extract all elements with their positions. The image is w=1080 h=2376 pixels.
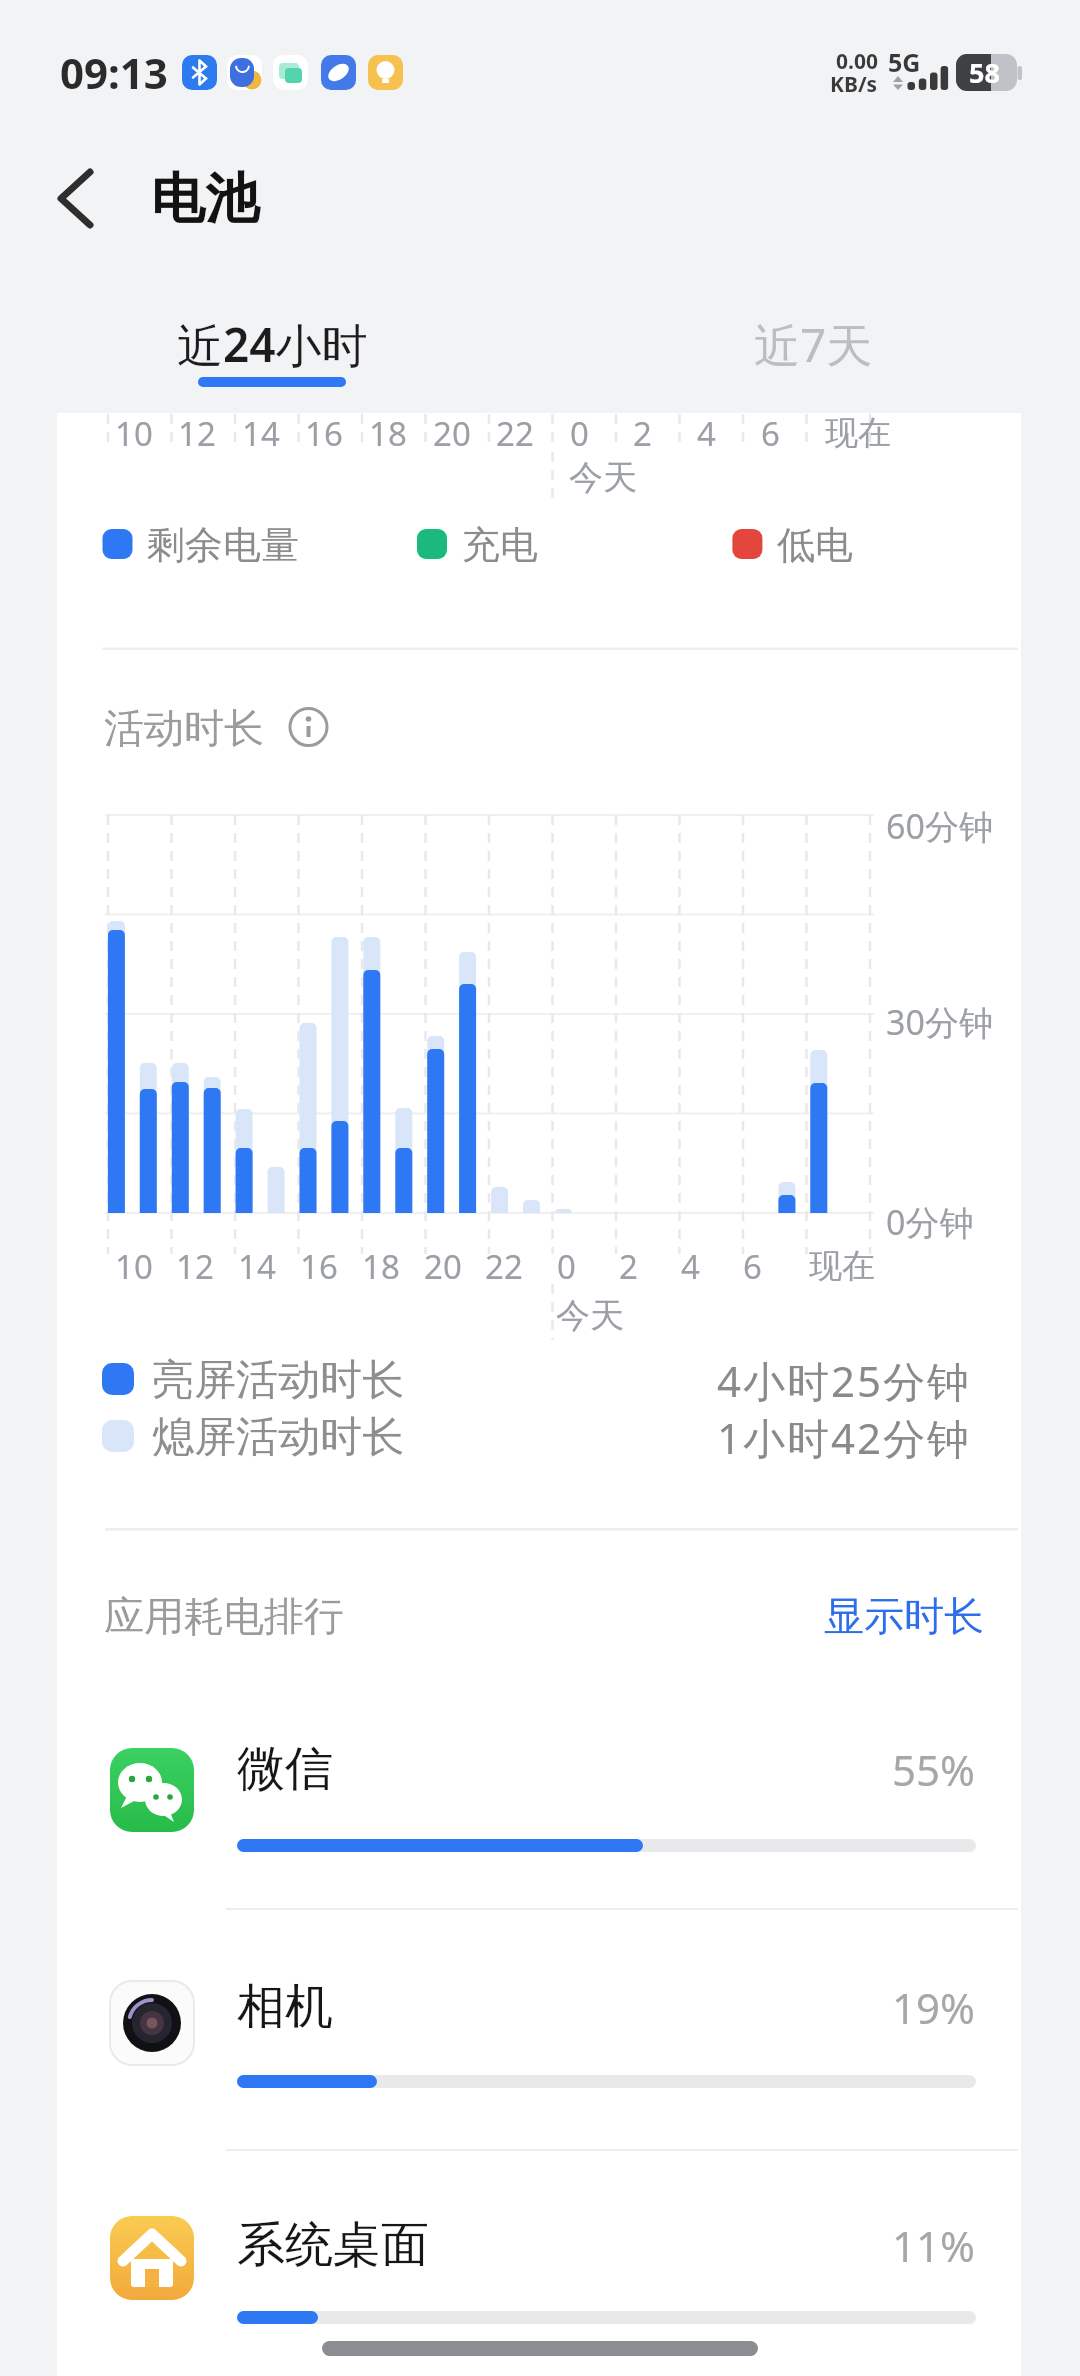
button[interactable] (57, 2151, 1021, 2341)
staticText: 剩余电量 (147, 521, 299, 569)
button[interactable] (57, 1690, 1021, 1908)
staticText: 09:13 (60, 44, 168, 101)
staticText: 14 (242, 411, 280, 456)
staticText: 5G (888, 45, 921, 79)
staticText: 18 (362, 1244, 400, 1289)
staticText: 0 (570, 411, 589, 456)
button[interactable] (285, 703, 335, 753)
staticText: 亮屏活动时长 (152, 1354, 404, 1407)
staticText: 现在 (825, 412, 891, 454)
staticText: 4小时25分钟 (717, 1352, 972, 1409)
staticText: 0.00 (836, 47, 878, 76)
staticText: 16 (305, 411, 343, 456)
staticText: 应用耗电排行 (104, 1591, 344, 1641)
staticText: 1小时42分钟 (717, 1409, 972, 1466)
staticText: 充电 (462, 521, 538, 569)
staticText: 0 (557, 1244, 576, 1289)
staticText: 2 (633, 411, 652, 456)
staticText: 10 (115, 1244, 153, 1289)
button[interactable]: 近7天 (663, 294, 963, 394)
staticText: 今天 (556, 1294, 624, 1337)
staticText: 今天 (569, 456, 637, 499)
staticText: 低电 (777, 521, 853, 569)
button[interactable]: 显示时长 (734, 1566, 984, 1666)
staticText: 22 (496, 411, 534, 456)
staticText: 12 (178, 411, 216, 456)
staticText: 4 (697, 411, 716, 456)
staticText: 显示时长 (824, 1591, 984, 1641)
staticText: 4 (681, 1244, 700, 1289)
staticText: 系统桌面 (237, 2215, 429, 2275)
staticText: 近7天 (754, 313, 873, 376)
staticText: 6 (743, 1244, 762, 1289)
staticText: 20 (433, 411, 471, 456)
button[interactable] (30, 150, 130, 250)
staticText: 6 (761, 411, 780, 456)
staticText: 12 (176, 1244, 214, 1289)
staticText: 近24小时 (177, 313, 368, 376)
button[interactable] (57, 1910, 1021, 2150)
staticText: 20 (424, 1244, 462, 1289)
staticText: 16 (300, 1244, 338, 1289)
staticText: 微信 (237, 1739, 333, 1799)
staticText: 60分钟 (886, 803, 993, 849)
staticText: 2 (619, 1244, 638, 1289)
staticText: 相机 (237, 1977, 333, 2037)
staticText: 11% (892, 2217, 975, 2274)
staticText: 58 (969, 54, 1000, 91)
button[interactable]: 近24小时 (122, 294, 422, 394)
staticText: 22 (485, 1244, 523, 1289)
staticText: 熄屏活动时长 (152, 1411, 404, 1464)
staticText: 19% (892, 1979, 975, 2036)
staticText: 55% (892, 1741, 975, 1798)
staticText: 18 (369, 411, 407, 456)
staticText: 电池 (151, 165, 259, 233)
staticText: 10 (115, 411, 153, 456)
staticText: 现在 (809, 1245, 875, 1287)
staticText: 0分钟 (886, 1199, 974, 1245)
staticText: 30分钟 (886, 999, 993, 1045)
staticText: KB/s (830, 70, 878, 99)
staticText: 活动时长 (104, 703, 264, 753)
staticText: 14 (238, 1244, 276, 1289)
